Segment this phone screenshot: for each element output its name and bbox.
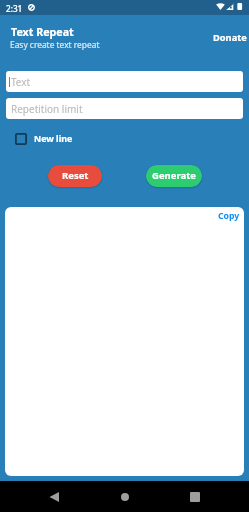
staticText: Generate — [152, 169, 196, 182]
button[interactable]: Repetition limit — [6, 98, 243, 119]
staticText: Copy — [218, 210, 240, 222]
staticText: Text Repeat — [11, 25, 74, 40]
button[interactable]: Copy — [209, 207, 244, 227]
button[interactable]: Text — [6, 71, 243, 92]
button[interactable]: New line — [15, 131, 249, 147]
button[interactable]: Donate — [200, 25, 249, 50]
staticText: 2:31 — [6, 3, 23, 14]
button[interactable]: Generate — [146, 165, 202, 187]
staticText: Repetition limit — [11, 102, 83, 116]
staticText: Text — [11, 75, 31, 89]
staticText: Donate — [213, 31, 247, 44]
staticText: Reset — [62, 169, 89, 182]
button[interactable]: Recent apps — [179, 481, 211, 512]
button[interactable]: Back — [38, 481, 70, 512]
staticText: New line — [34, 133, 73, 145]
button[interactable]: Reset — [48, 165, 102, 187]
button[interactable]: Home — [109, 481, 141, 512]
staticText: Easy create text repeat — [10, 39, 100, 50]
